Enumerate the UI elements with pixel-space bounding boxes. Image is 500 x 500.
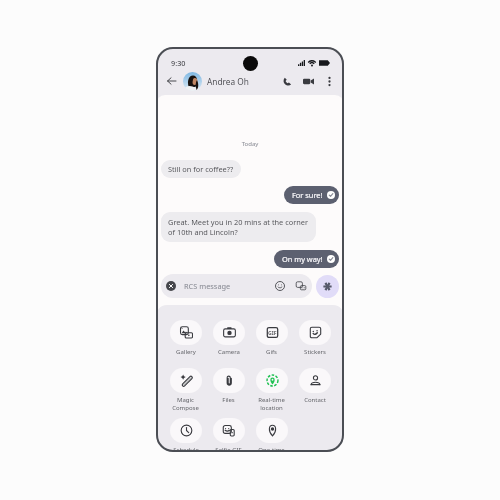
staticText: One-time: [258, 446, 285, 452]
button[interactable]: Great. Meet you in 20 mins at the corner…: [161, 212, 316, 242]
button[interactable]: GIF: [250, 320, 293, 356]
staticText: 9:30: [171, 58, 186, 68]
button[interactable]: Real-time location: [250, 368, 293, 412]
staticText: Real-time location: [258, 396, 285, 412]
staticText: Gifs: [266, 348, 277, 356]
staticText: RCS message: [184, 281, 231, 291]
staticText: GIF: [268, 329, 277, 336]
staticText: On my way!: [282, 254, 323, 264]
staticText: Camera: [218, 348, 240, 356]
button[interactable]: Selfie GIF: [207, 418, 250, 452]
button[interactable]: RCS message: [161, 274, 312, 298]
staticText: Stickers: [304, 348, 326, 356]
staticText: Gallery: [176, 348, 196, 356]
staticText: Still on for coffee??: [168, 164, 234, 174]
button[interactable]: Schedule: [164, 418, 207, 452]
staticText: Files: [222, 396, 235, 404]
button[interactable]: For sure!: [284, 186, 339, 204]
staticText: Today: [161, 140, 339, 148]
button[interactable]: Video call: [301, 74, 315, 88]
staticText: Magic Compose: [172, 396, 199, 412]
staticText: Andrea Oh: [207, 76, 249, 87]
button[interactable]: One-time: [250, 418, 293, 452]
button[interactable]: On my way!: [274, 250, 339, 268]
button[interactable]: Gallery: [164, 320, 207, 356]
button[interactable]: Voice message: [316, 275, 339, 298]
staticText: Selfie GIF: [215, 446, 242, 452]
staticText: Great. Meet you in 20 mins at the corner…: [168, 217, 309, 237]
button[interactable]: Still on for coffee??: [161, 160, 241, 178]
button[interactable]: Back: [164, 74, 178, 88]
button[interactable]: Files: [207, 368, 250, 404]
button[interactable]: Magic Compose: [164, 368, 207, 412]
button[interactable]: Contact: [293, 368, 336, 404]
button[interactable]: Call: [280, 74, 294, 88]
staticText: Contact: [304, 396, 326, 404]
button[interactable]: Camera: [207, 320, 250, 356]
button[interactable]: Contact photo: [183, 72, 202, 91]
button[interactable]: More options: [323, 75, 336, 88]
staticText: Schedule: [173, 446, 199, 452]
button[interactable]: Stickers: [293, 320, 336, 356]
staticText: For sure!: [292, 190, 323, 200]
